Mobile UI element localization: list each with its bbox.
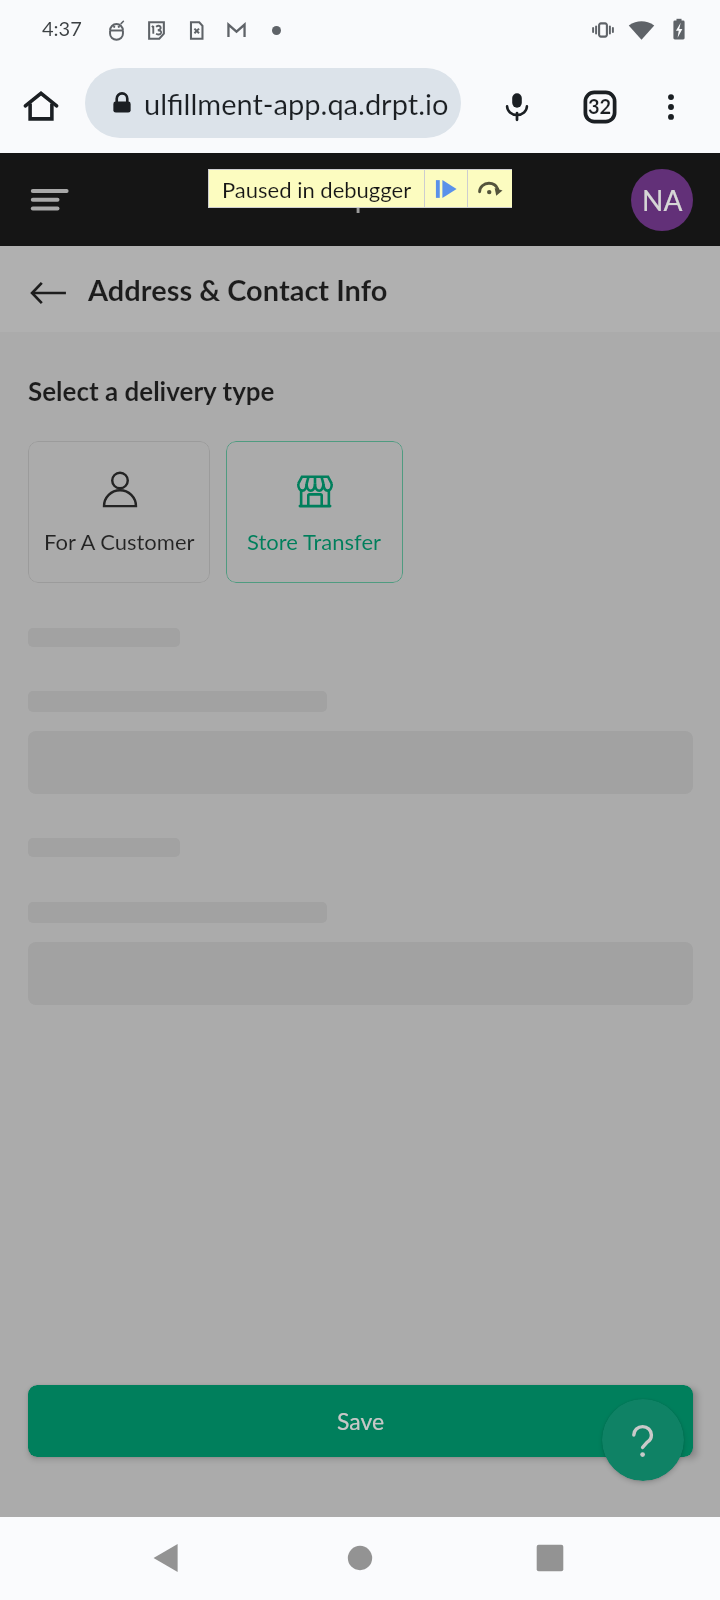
staticText: 32 [588,94,612,118]
button[interactable]: More options [643,79,699,135]
staticText: Store Transfer [247,528,382,554]
staticText: 4:37 [42,16,82,40]
button[interactable]: Back [22,266,76,320]
button[interactable]: Voice search [489,79,545,135]
button[interactable]: Back [127,1518,207,1598]
button[interactable]: ulfillment-app.qa.drpt.io [85,68,461,138]
button[interactable]: Home [320,1518,400,1598]
button[interactable]: Home [14,80,68,134]
button[interactable]: Resume script execution [425,170,467,207]
button[interactable]: Menu [16,167,80,231]
button[interactable]: Save [28,1385,693,1457]
button[interactable]: Store Transfer [226,441,403,583]
button[interactable]: Step over next function call [468,170,512,207]
staticText: NA [642,183,683,217]
button[interactable]: For A Customer [28,441,210,583]
button[interactable]: Help [602,1399,684,1481]
staticText: For A Customer [44,528,195,554]
button[interactable]: Open tabs [572,79,628,135]
staticText: Address & Contact Info [88,272,388,307]
button[interactable]: Account [631,169,693,231]
staticText: Select a delivery type [28,375,275,406]
staticText: ulfillment-app.qa.drpt.io [144,86,449,121]
staticText: Paused in debugger [222,176,412,202]
button[interactable]: Recent apps [510,1518,590,1598]
staticText: Dropit [303,177,391,214]
staticText: Save [337,1407,385,1435]
